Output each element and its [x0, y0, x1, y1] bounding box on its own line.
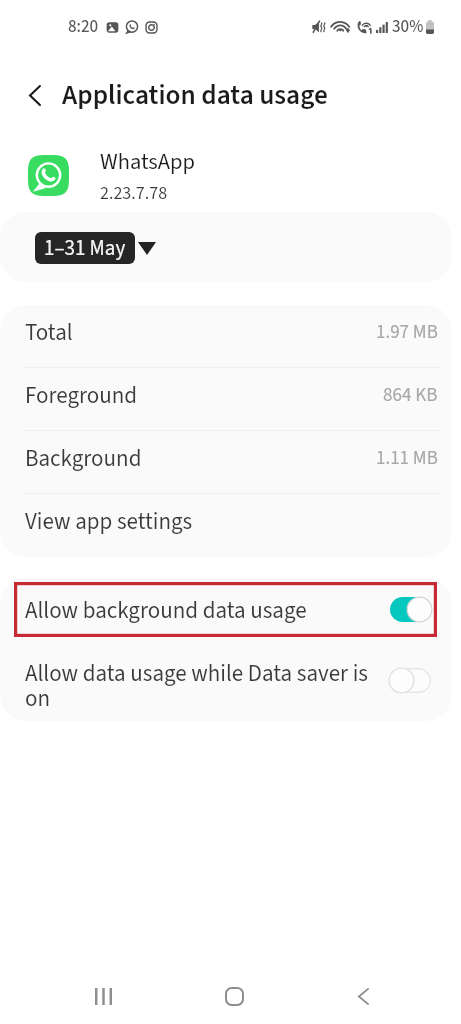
button[interactable]: Background: [0, 431, 452, 494]
staticText: 1–31 May: [44, 233, 126, 263]
button[interactable]: Foreground: [0, 368, 452, 431]
button[interactable]: Change period: [138, 239, 156, 257]
staticText: 30%: [392, 15, 424, 39]
staticText: 864 KB: [383, 382, 438, 409]
button[interactable]: Navigate up: [19, 79, 51, 111]
button[interactable]: View app settings: [0, 494, 452, 557]
staticText: 1.11 MB: [376, 445, 438, 472]
staticText: Foreground: [25, 379, 138, 412]
staticText: WhatsApp: [100, 146, 195, 178]
button[interactable]: Total: [0, 305, 452, 368]
staticText: 1.97 MB: [376, 319, 438, 346]
staticText: 8:20: [68, 15, 99, 39]
button[interactable]: Switch, off: [389, 668, 431, 693]
staticText: Application data usage: [62, 76, 328, 115]
button[interactable]: Home: [212, 974, 256, 1018]
button[interactable]: Switch, on: [390, 597, 432, 622]
button[interactable]: Allow data usage while Data saver is on: [0, 645, 452, 721]
staticText: Total: [25, 316, 73, 349]
button[interactable]: 1–31 May: [35, 232, 135, 264]
staticText: Background: [25, 442, 142, 475]
button[interactable]: Allow background data usage: [0, 578, 452, 645]
staticText: 2.23.7.78: [100, 181, 168, 207]
button[interactable]: Recent apps: [81, 974, 125, 1018]
staticText: View app settings: [25, 505, 193, 538]
button[interactable]: Back: [341, 974, 385, 1018]
staticText: Allow background data usage: [25, 594, 390, 627]
staticText: Allow data usage while Data saver is on: [25, 657, 369, 715]
